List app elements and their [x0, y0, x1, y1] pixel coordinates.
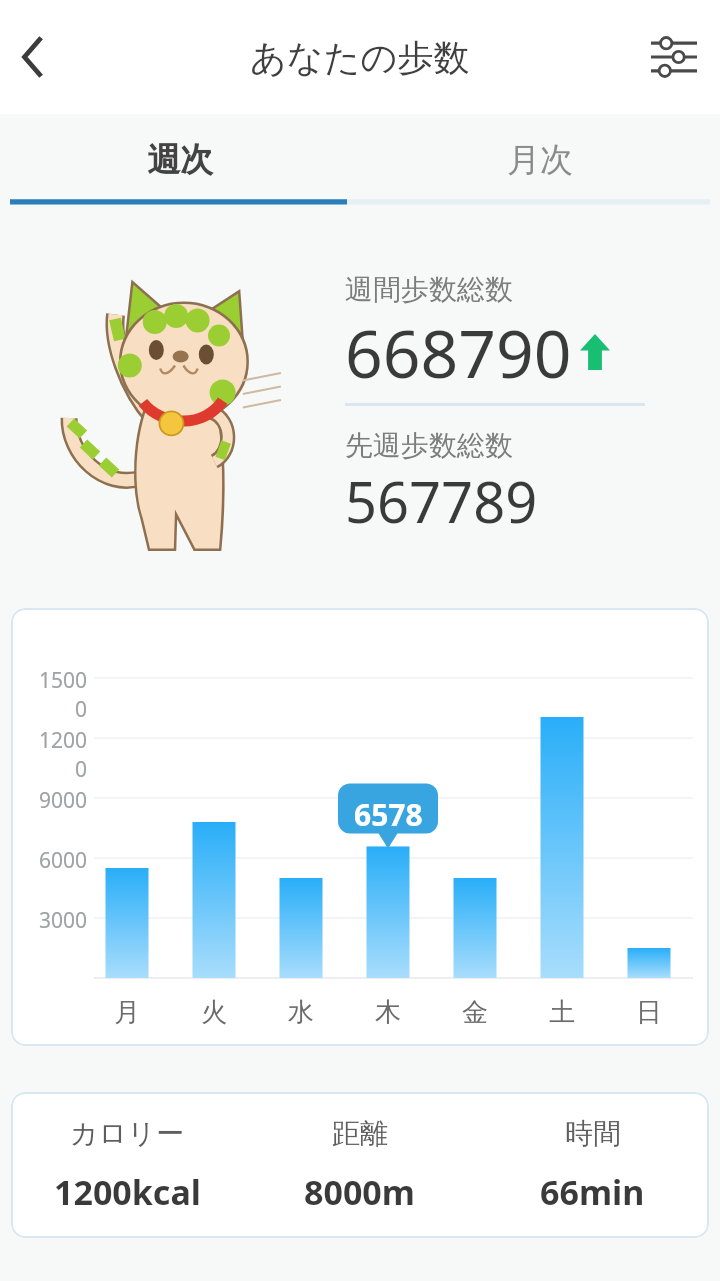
staticText: カロリー — [70, 1116, 184, 1151]
staticText: 66min — [540, 1169, 645, 1215]
button[interactable]: Back — [4, 25, 68, 89]
staticText: 8000m — [304, 1169, 415, 1215]
staticText: あなたの歩数 — [250, 35, 470, 80]
button[interactable]: 月次 — [360, 114, 720, 206]
staticText: 日 — [636, 996, 662, 1029]
button[interactable]: 週次 — [0, 114, 360, 206]
staticText: 6000 — [29, 846, 87, 875]
staticText: 木 — [375, 996, 401, 1029]
staticText: 週次 — [147, 139, 213, 181]
staticText: 567789 — [345, 463, 538, 539]
button[interactable]: Settings — [642, 25, 706, 89]
staticText: 3000 — [29, 906, 87, 935]
staticText: 月 — [114, 996, 140, 1029]
staticText: 1200kcal — [54, 1169, 201, 1215]
staticText: 火 — [201, 996, 227, 1029]
staticText: 週間歩数総数 — [345, 272, 513, 307]
staticText: 6578 — [354, 794, 423, 835]
staticText: 時間 — [565, 1116, 621, 1151]
staticText: 15000 — [29, 666, 87, 724]
staticText: 月次 — [507, 139, 573, 181]
staticText: 金 — [462, 996, 488, 1029]
staticText: 12000 — [29, 726, 87, 784]
staticText: 土 — [549, 996, 575, 1029]
staticText: 先週歩数総数 — [345, 428, 513, 463]
staticText: 水 — [288, 996, 314, 1029]
staticText: 距離 — [332, 1116, 388, 1151]
staticText: 668790 — [345, 307, 572, 397]
staticText: 9000 — [29, 786, 87, 815]
button[interactable]: カロリー — [11, 1092, 709, 1238]
